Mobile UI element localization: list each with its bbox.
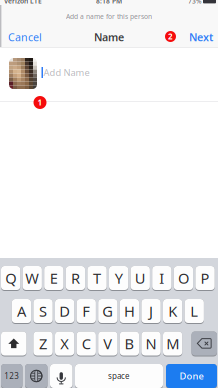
staticText: R [71,268,80,288]
staticText: 123 [4,371,19,381]
staticText: X [60,334,69,353]
staticText: D [59,301,70,321]
staticText: G [102,301,113,321]
staticText: 73% [188,0,202,5]
button[interactable]: Y [109,266,128,291]
button[interactable]: T [87,266,107,291]
button[interactable]: F [77,299,96,324]
button[interactable]: P [195,266,215,291]
button[interactable]: Done [166,364,217,388]
button[interactable]: A [12,299,31,324]
staticText: Next [189,30,213,44]
staticText: Add a name for this person [66,12,152,21]
staticText: T [93,268,101,288]
button[interactable]: K [163,299,182,324]
button[interactable]: U [131,266,150,291]
staticText: I [159,268,164,288]
staticText: Q [5,268,16,288]
button[interactable]: G [98,299,117,324]
staticText: A [17,301,26,321]
staticText: Verizon LTE [4,0,42,5]
staticText: H [124,301,135,321]
button[interactable]: B [120,331,139,356]
staticText: 8:18 PM [96,0,122,5]
button[interactable]: Z [33,331,53,356]
staticText: F [82,301,90,321]
button[interactable]: O [174,266,193,291]
button[interactable]: M [163,331,182,356]
staticText: S [39,301,47,321]
staticText: W [25,268,39,288]
button[interactable]: L [185,299,204,324]
button[interactable]: E [44,266,63,291]
staticText: L [190,301,198,321]
button[interactable]: D [55,299,74,324]
staticText: 1 [37,97,42,108]
staticText: Add Name [43,66,89,79]
staticText: Done [179,370,203,382]
button[interactable]: S [33,299,53,324]
staticText: V [103,334,112,353]
button[interactable]: N [141,331,161,356]
button[interactable]: Shift [1,331,26,356]
button[interactable]: Next keyboard [25,364,47,388]
button[interactable]: W [23,266,42,291]
button[interactable]: Dictate [50,364,72,388]
staticText: P [201,268,210,288]
staticText: J [149,301,153,321]
staticText: 2 [168,31,173,42]
button[interactable]: X [55,331,74,356]
button[interactable]: R [66,266,85,291]
button[interactable]: I [152,266,171,291]
staticText: K [168,301,177,321]
staticText: Cancel [8,30,42,44]
button[interactable]: J [141,299,161,324]
staticText: Name [94,30,124,44]
button[interactable]: Q [1,266,20,291]
staticText: N [146,334,157,353]
staticText: U [135,268,146,288]
button[interactable]: Next [187,28,213,46]
staticText: E [50,268,58,288]
staticText: B [124,334,134,353]
button[interactable]: Delete [191,331,217,356]
button[interactable]: V [98,331,117,356]
button[interactable]: Numbers [1,364,22,388]
staticText: M [166,334,179,353]
staticText: Y [115,268,123,288]
button[interactable]: H [120,299,139,324]
staticText: space [108,371,130,381]
button[interactable]: space [75,364,163,388]
staticText: Z [39,334,47,353]
button[interactable]: C [77,331,96,356]
staticText: O [178,268,189,288]
staticText: C [82,334,91,353]
button[interactable]: Cancel [8,28,48,46]
